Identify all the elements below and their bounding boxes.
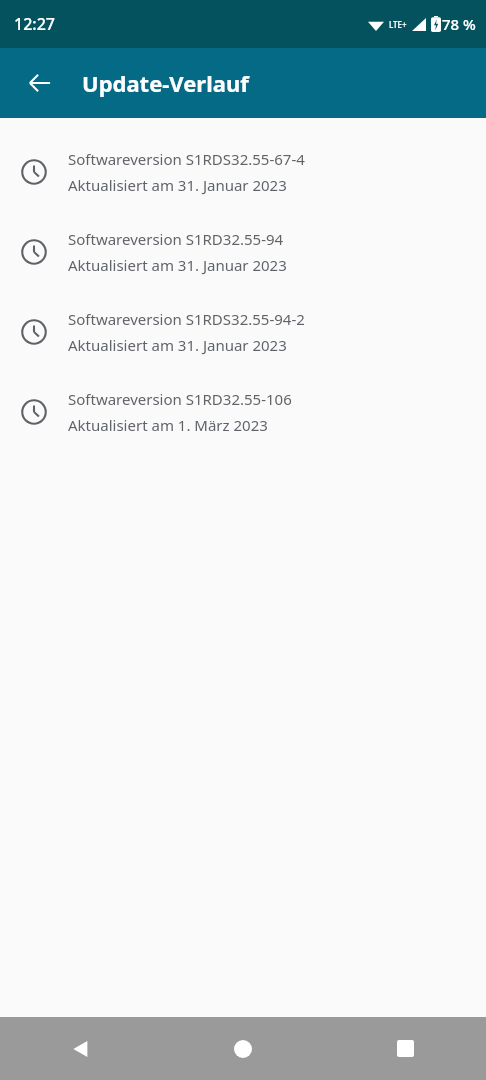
staticText: 12:27	[14, 13, 55, 35]
button[interactable]: Softwareversion S1RD32.55-106	[0, 372, 486, 452]
staticText: Softwareversion S1RDS32.55-67-4	[68, 149, 305, 169]
button[interactable]: Softwareversion S1RD32.55-94	[0, 212, 486, 292]
staticText: Aktualisiert am 31. Januar 2023	[68, 255, 287, 275]
staticText: Softwareversion S1RDS32.55-94-2	[68, 309, 305, 329]
button[interactable]: Softwareversion S1RDS32.55-94-2	[0, 292, 486, 372]
button[interactable]: Zurück	[18, 61, 62, 105]
button[interactable]: Startbildschirm	[162, 1017, 324, 1080]
staticText: Softwareversion S1RD32.55-106	[68, 389, 292, 409]
staticText: Aktualisiert am 1. März 2023	[68, 415, 268, 435]
staticText: LTE+	[389, 19, 407, 30]
button[interactable]: Übersicht	[324, 1017, 486, 1080]
button[interactable]: Zurück	[0, 1017, 162, 1080]
staticText: Softwareversion S1RD32.55-94	[68, 229, 284, 249]
staticText: Aktualisiert am 31. Januar 2023	[68, 335, 287, 355]
staticText: Update-Verlauf	[82, 68, 249, 98]
staticText: 78 %	[442, 14, 476, 34]
button[interactable]: Softwareversion S1RDS32.55-67-4	[0, 132, 486, 212]
staticText: Aktualisiert am 31. Januar 2023	[68, 175, 287, 195]
